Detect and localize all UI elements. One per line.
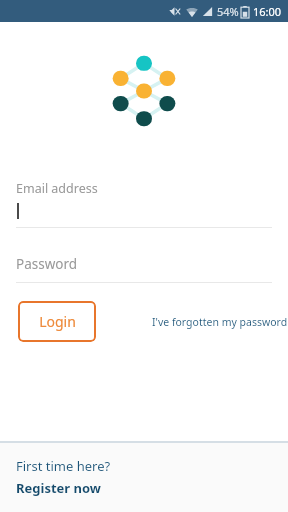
button[interactable]: I've forgotten my password [152, 315, 288, 329]
staticText: Email address [16, 180, 98, 197]
button[interactable]: First time here? [16, 457, 111, 497]
staticText: Login [39, 312, 76, 331]
staticText: 16:00 [253, 4, 282, 19]
button[interactable]: Email address [0, 180, 288, 228]
staticText: Password [16, 255, 78, 273]
other: App logo [112, 55, 176, 127]
button[interactable]: Login [18, 301, 96, 342]
staticText: I've forgotten my password [152, 315, 288, 329]
button[interactable]: Password [0, 255, 288, 283]
staticText: First time here? [16, 457, 111, 475]
staticText: Register now [16, 479, 101, 497]
staticText: 54% [217, 4, 239, 19]
